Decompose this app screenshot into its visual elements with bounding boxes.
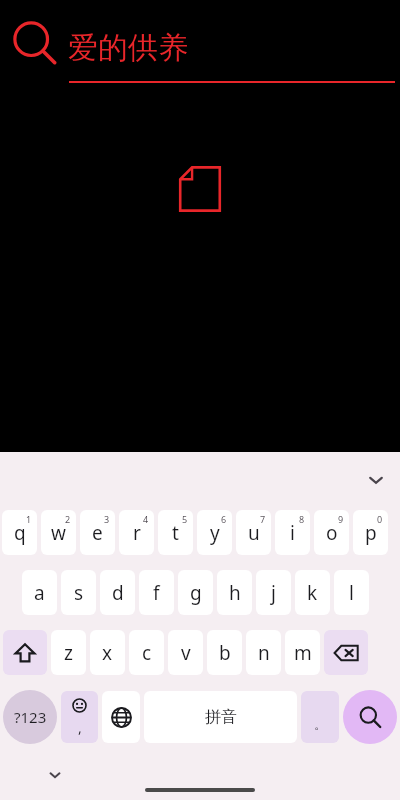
staticText: l <box>349 580 354 606</box>
button[interactable]: z <box>51 630 86 675</box>
staticText: 0 <box>377 513 383 525</box>
button[interactable]: m <box>285 630 320 675</box>
staticText: t <box>172 520 179 546</box>
button[interactable]: b <box>207 630 242 675</box>
button[interactable]: Search <box>343 690 397 744</box>
staticText: g <box>190 580 202 606</box>
staticText: 5 <box>182 513 188 525</box>
staticText: ?123 <box>14 707 47 727</box>
staticText: f <box>153 580 160 606</box>
staticText: 8 <box>299 513 305 525</box>
button[interactable]: a <box>22 570 57 615</box>
button[interactable]: Search <box>12 20 60 68</box>
staticText: v <box>181 640 191 666</box>
button[interactable]: u <box>236 510 271 555</box>
button[interactable]: k <box>295 570 330 615</box>
staticText: 2 <box>65 513 71 525</box>
staticText: e <box>92 520 103 546</box>
staticText: 9 <box>338 513 344 525</box>
button[interactable]: Backspace <box>324 630 368 675</box>
staticText: z <box>64 640 73 666</box>
staticText: p <box>365 520 377 546</box>
button[interactable]: x <box>90 630 125 675</box>
staticText: c <box>142 640 152 666</box>
button[interactable]: f <box>139 570 174 615</box>
button[interactable]: o <box>314 510 349 555</box>
staticText: b <box>219 640 231 666</box>
button[interactable]: h <box>217 570 252 615</box>
button[interactable]: r <box>119 510 154 555</box>
staticText: m <box>294 640 312 666</box>
button[interactable]: n <box>246 630 281 675</box>
staticText: i <box>290 520 295 546</box>
staticText: 6 <box>221 513 227 525</box>
button[interactable]: g <box>178 570 213 615</box>
staticText: u <box>248 520 260 546</box>
button[interactable]: d <box>100 570 135 615</box>
staticText: s <box>74 580 84 606</box>
button[interactable]: Change keyboard language <box>102 691 140 743</box>
button[interactable]: t <box>158 510 193 555</box>
button[interactable]: q <box>2 510 37 555</box>
button[interactable]: p <box>353 510 388 555</box>
staticText: 7 <box>260 513 266 525</box>
staticText: a <box>34 580 45 606</box>
staticText: 1 <box>26 513 32 525</box>
button[interactable]: j <box>256 570 291 615</box>
button[interactable]: e <box>80 510 115 555</box>
staticText: o <box>326 520 338 546</box>
button[interactable]: v <box>168 630 203 675</box>
button[interactable]: Emoji and comma <box>61 691 98 743</box>
staticText: w <box>51 520 66 546</box>
staticText: n <box>258 640 270 666</box>
staticText: x <box>102 640 113 666</box>
staticText: k <box>307 580 318 606</box>
button[interactable]: s <box>61 570 96 615</box>
button[interactable]: Collapse <box>42 762 68 788</box>
button[interactable]: ?123 <box>3 690 57 744</box>
staticText: q <box>14 520 26 546</box>
staticText: 拼音 <box>205 707 237 727</box>
staticText: j <box>271 580 276 606</box>
button[interactable]: Hide keyboard <box>360 464 392 496</box>
button[interactable]: i <box>275 510 310 555</box>
button[interactable]: 爱的供养 <box>68 22 396 74</box>
staticText: 4 <box>143 513 149 525</box>
button[interactable]: w <box>41 510 76 555</box>
staticText: 爱的供养 <box>68 29 188 67</box>
button[interactable]: c <box>129 630 164 675</box>
button[interactable]: 拼音 <box>144 691 297 743</box>
staticText: y <box>210 520 220 546</box>
staticText: h <box>229 580 241 606</box>
button[interactable]: l <box>334 570 369 615</box>
button[interactable]: 。 <box>301 691 339 743</box>
button[interactable]: Shift <box>3 630 47 675</box>
staticText: r <box>133 520 141 546</box>
staticText: d <box>112 580 124 606</box>
staticText: 3 <box>104 513 110 525</box>
staticText: , <box>78 718 82 737</box>
button[interactable]: y <box>197 510 232 555</box>
staticText: 。 <box>314 716 327 732</box>
